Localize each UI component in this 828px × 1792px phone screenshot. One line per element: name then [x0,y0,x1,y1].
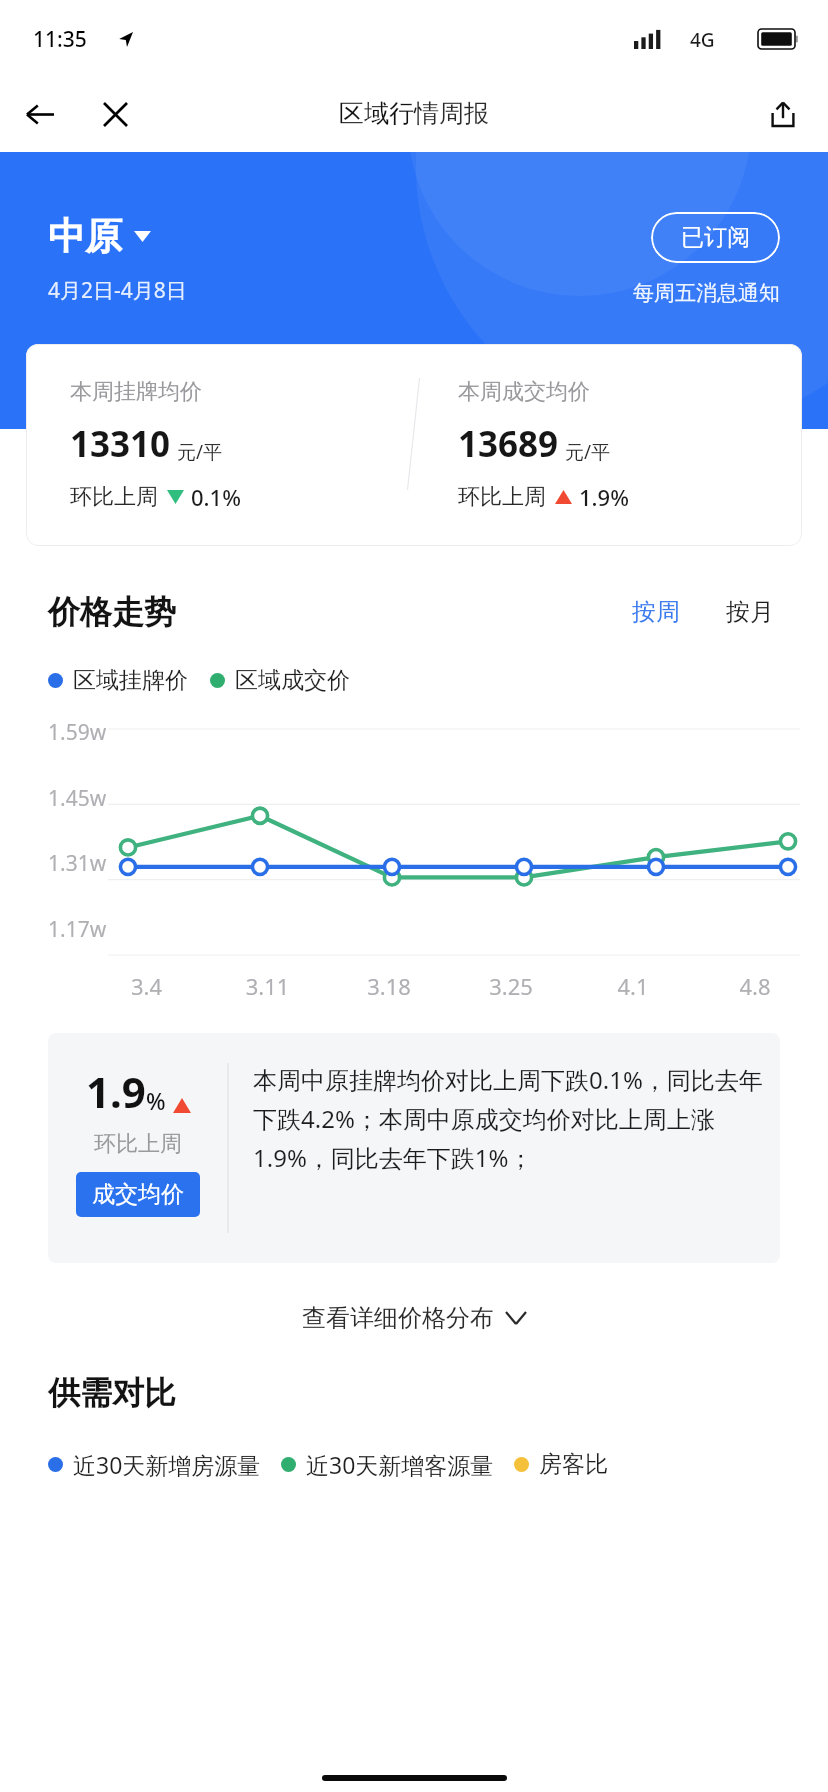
staticText: 元/平 [565,439,611,465]
staticText: 1.31w [48,849,107,878]
staticText: 查看详细价格分布 [302,1303,494,1333]
staticText: 按周 [632,597,680,627]
staticText: 按月 [726,597,774,627]
staticText: 环比上周 [94,1130,182,1158]
staticText: 元/平 [177,439,223,465]
staticText: 1.9% [579,482,629,512]
staticText: 已订阅 [681,223,750,252]
staticText: 3.18 [328,971,450,1001]
button[interactable]: Share [756,87,810,141]
staticText: 4.1 [572,971,694,1001]
staticText: % [146,1085,166,1116]
button[interactable]: 本周挂牌均价 [26,344,802,546]
staticText: 1.45w [48,784,107,813]
staticText: 本周挂牌均价 [70,378,202,406]
staticText: 中原 [48,213,122,260]
button[interactable]: 1.9 [48,1033,780,1263]
staticText: 1.59w [48,718,107,747]
button[interactable]: Back [14,88,66,140]
staticText: 区域行情周报 [339,98,489,129]
staticText: 环比上周 [70,483,158,511]
button[interactable]: 已订阅 [651,212,780,263]
button[interactable]: 中原 [48,213,151,260]
staticText: 4.8 [694,971,816,1001]
staticText: 1.9 [86,1063,146,1120]
staticText: 本周中原挂牌均价对比上周下跌0.1%，同比去年下跌4.2%；本周中原成交均价对比… [253,1063,764,1174]
button[interactable]: 按月 [720,593,780,631]
staticText: 房客比 [539,1450,608,1479]
staticText: 每周五消息通知 [633,280,780,306]
staticText: 价格走势 [48,592,176,632]
button[interactable]: 查看详细价格分布 [0,1293,828,1343]
staticText: 区域挂牌价 [73,666,188,695]
button[interactable]: Close [89,88,141,140]
staticText: 13689 [458,420,559,468]
staticText: 0.1% [191,482,241,512]
staticText: 3.11 [207,971,328,1001]
staticText: 近30天新增房源量 [73,1449,261,1480]
staticText: 环比上周 [458,483,546,511]
staticText: 3.25 [450,971,572,1001]
staticText: 13310 [70,420,171,468]
staticText: 成交均价 [92,1180,184,1209]
staticText: 区域成交价 [235,666,350,695]
button[interactable]: 按周 [626,593,686,631]
staticText: 4月2日-4月8日 [48,276,187,305]
staticText: 11:35 [33,25,87,54]
staticText: 本周成交均价 [458,378,590,406]
staticText: 4G [690,27,715,53]
staticText: 3.4 [86,971,207,1001]
staticText: 1.17w [48,915,107,944]
staticText: 供需对比 [48,1373,176,1413]
staticText: 近30天新增客源量 [306,1449,494,1480]
